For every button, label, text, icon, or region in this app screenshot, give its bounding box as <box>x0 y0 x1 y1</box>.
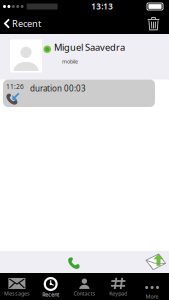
button[interactable]: Delete <box>147 14 169 33</box>
button[interactable]: Messages <box>0 273 34 300</box>
staticText: Contacts <box>73 290 95 297</box>
button[interactable]: More <box>135 273 169 300</box>
staticText: Recent <box>42 291 59 298</box>
button[interactable]: Contacts <box>68 273 101 300</box>
staticText: Miguel Saavedra <box>54 41 125 53</box>
button[interactable]: Recent <box>34 273 68 300</box>
staticText: 13:13 <box>91 1 113 12</box>
staticText: Messages <box>4 290 30 297</box>
button[interactable]: Recent <box>0 13 41 34</box>
staticText: More <box>146 293 159 300</box>
staticText: mobile <box>62 58 78 65</box>
button[interactable]: Share <box>142 251 169 273</box>
staticText: Recent <box>12 17 41 30</box>
staticText: Keypad <box>109 290 127 297</box>
button[interactable]: Call <box>61 252 87 274</box>
staticText: 11:26 <box>6 82 24 91</box>
button[interactable]: Keypad <box>101 273 135 300</box>
staticText: duration 00:03 <box>30 83 86 94</box>
